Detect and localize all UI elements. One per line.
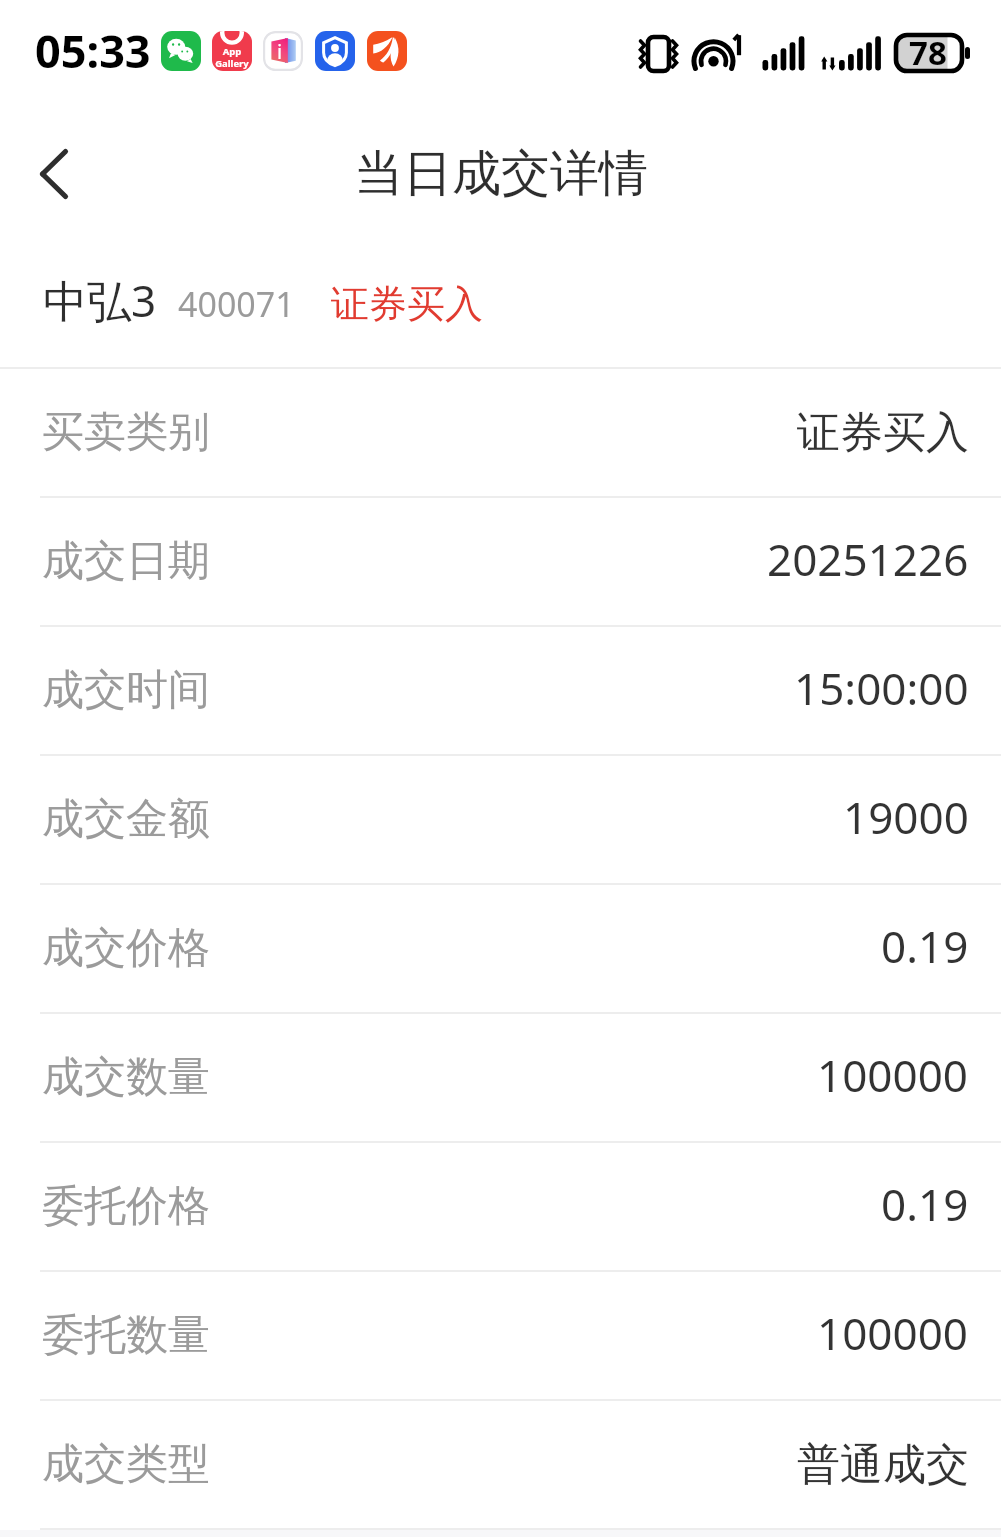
button[interactable]: 成交金额 xyxy=(0,756,1001,883)
staticText: App Gallery xyxy=(215,45,249,69)
staticText: 成交类型 xyxy=(42,1438,210,1491)
button[interactable]: Back xyxy=(0,120,108,228)
staticText: 78 xyxy=(909,30,947,75)
button[interactable]: 买卖类别 xyxy=(0,369,1001,496)
button[interactable]: 成交类型 xyxy=(0,1401,1001,1528)
staticText: 0.19 xyxy=(881,916,969,976)
staticText: 成交数量 xyxy=(42,1051,210,1104)
staticText: 委托数量 xyxy=(42,1309,210,1362)
staticText: 15:00:00 xyxy=(794,658,969,718)
staticText: 05:33 xyxy=(35,20,151,81)
staticText: 成交金额 xyxy=(42,793,210,846)
staticText: 成交日期 xyxy=(42,535,210,588)
button[interactable]: 委托价格 xyxy=(0,1143,1001,1270)
button[interactable]: 成交时间 xyxy=(0,627,1001,754)
staticText: 400071 xyxy=(178,281,295,327)
button[interactable]: 成交日期 xyxy=(0,498,1001,625)
staticText: 普通成交 xyxy=(797,1438,969,1492)
staticText: 100000 xyxy=(817,1303,969,1363)
staticText: 成交时间 xyxy=(42,664,210,717)
staticText: 100000 xyxy=(817,1045,969,1105)
staticText: 证券买入 xyxy=(331,280,483,328)
staticText: 20251226 xyxy=(767,529,969,589)
button[interactable]: 成交数量 xyxy=(0,1014,1001,1141)
staticText: 买卖类别 xyxy=(42,406,210,459)
staticText: 当日成交详情 xyxy=(354,143,648,205)
button[interactable]: 成交价格 xyxy=(0,885,1001,1012)
staticText: i xyxy=(277,38,283,65)
staticText: 成交价格 xyxy=(42,922,210,975)
staticText: 中弘3 xyxy=(43,270,157,330)
staticText: 19000 xyxy=(843,787,969,847)
button[interactable]: 委托数量 xyxy=(0,1272,1001,1399)
staticText: 0.19 xyxy=(881,1174,969,1234)
staticText: 委托价格 xyxy=(42,1180,210,1233)
staticText: 证券买入 xyxy=(797,406,969,460)
